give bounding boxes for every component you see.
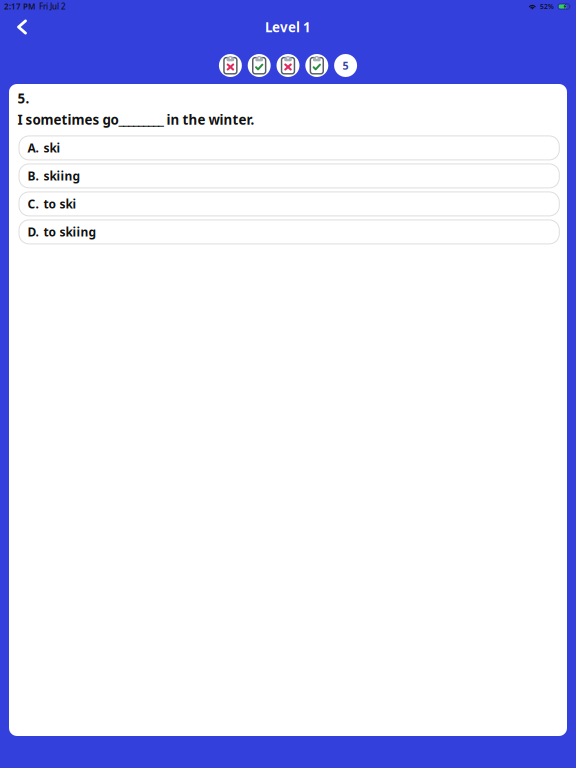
staticText: to skiing bbox=[43, 224, 96, 240]
staticText: Level 1 bbox=[265, 18, 311, 36]
button[interactable]: D. bbox=[19, 220, 559, 244]
staticText: C. bbox=[27, 196, 38, 212]
staticText: A. bbox=[27, 140, 38, 156]
button[interactable]: Question answered correctly bbox=[248, 54, 271, 77]
button[interactable]: Back bbox=[7, 12, 37, 41]
staticText: ski bbox=[43, 140, 60, 156]
button[interactable]: C. bbox=[19, 192, 559, 216]
button[interactable]: Question answered incorrectly bbox=[276, 54, 299, 77]
staticText: 2:17 PM bbox=[4, 1, 35, 12]
button[interactable]: A. bbox=[19, 136, 559, 160]
button[interactable]: B. bbox=[19, 164, 559, 188]
staticText: D. bbox=[27, 224, 38, 240]
staticText: skiing bbox=[43, 168, 80, 184]
staticText: 5 bbox=[343, 58, 349, 73]
staticText: to ski bbox=[43, 196, 76, 212]
staticText: 5. bbox=[17, 89, 29, 107]
staticText: 52% bbox=[540, 2, 554, 11]
button[interactable]: Question answered correctly bbox=[305, 54, 328, 77]
button[interactable]: Question answered incorrectly bbox=[219, 54, 242, 77]
staticText: I sometimes go_________ in the winter. bbox=[17, 111, 254, 128]
staticText: B. bbox=[27, 168, 38, 184]
staticText: Fri Jul 2 bbox=[35, 1, 66, 12]
